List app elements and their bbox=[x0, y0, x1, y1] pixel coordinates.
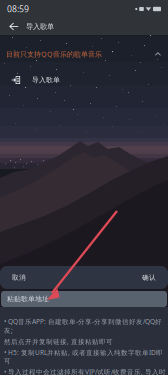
button[interactable]: 粘贴歌单地址 bbox=[0, 291, 166, 307]
button[interactable]: 导入歌单 bbox=[0, 72, 168, 88]
staticText: 取消 bbox=[12, 273, 26, 282]
staticText: 08:59 bbox=[7, 3, 29, 15]
staticText: 目前只支持QQ音乐的歌单音乐 bbox=[6, 49, 102, 59]
staticText: 粘贴歌单地址 bbox=[7, 295, 49, 303]
staticText: 导入歌单 bbox=[26, 22, 54, 31]
staticText: 确认 bbox=[142, 273, 156, 282]
staticText: 导入歌单 bbox=[32, 76, 60, 84]
button[interactable]: 目前只支持QQ音乐的歌单音乐 bbox=[0, 46, 168, 62]
staticText: • H5: 复制URL并粘贴, 或者直接输入纯数字歌单ID即可 bbox=[4, 348, 163, 365]
button[interactable]: 确认 bbox=[106, 266, 168, 289]
staticText: 然后点开并复制链接, 直接粘贴即可 bbox=[4, 337, 113, 346]
staticText: • 导入过程中会过滤掉所有VIP/试听/收费音乐, 导入时间和 bbox=[4, 367, 166, 375]
staticText: • QQ音乐APP: 自建歌单-分享-分享到微信好友/QQ好友; bbox=[4, 317, 162, 335]
button[interactable]: 取消 bbox=[0, 266, 62, 289]
button[interactable]: Back bbox=[6, 18, 22, 35]
